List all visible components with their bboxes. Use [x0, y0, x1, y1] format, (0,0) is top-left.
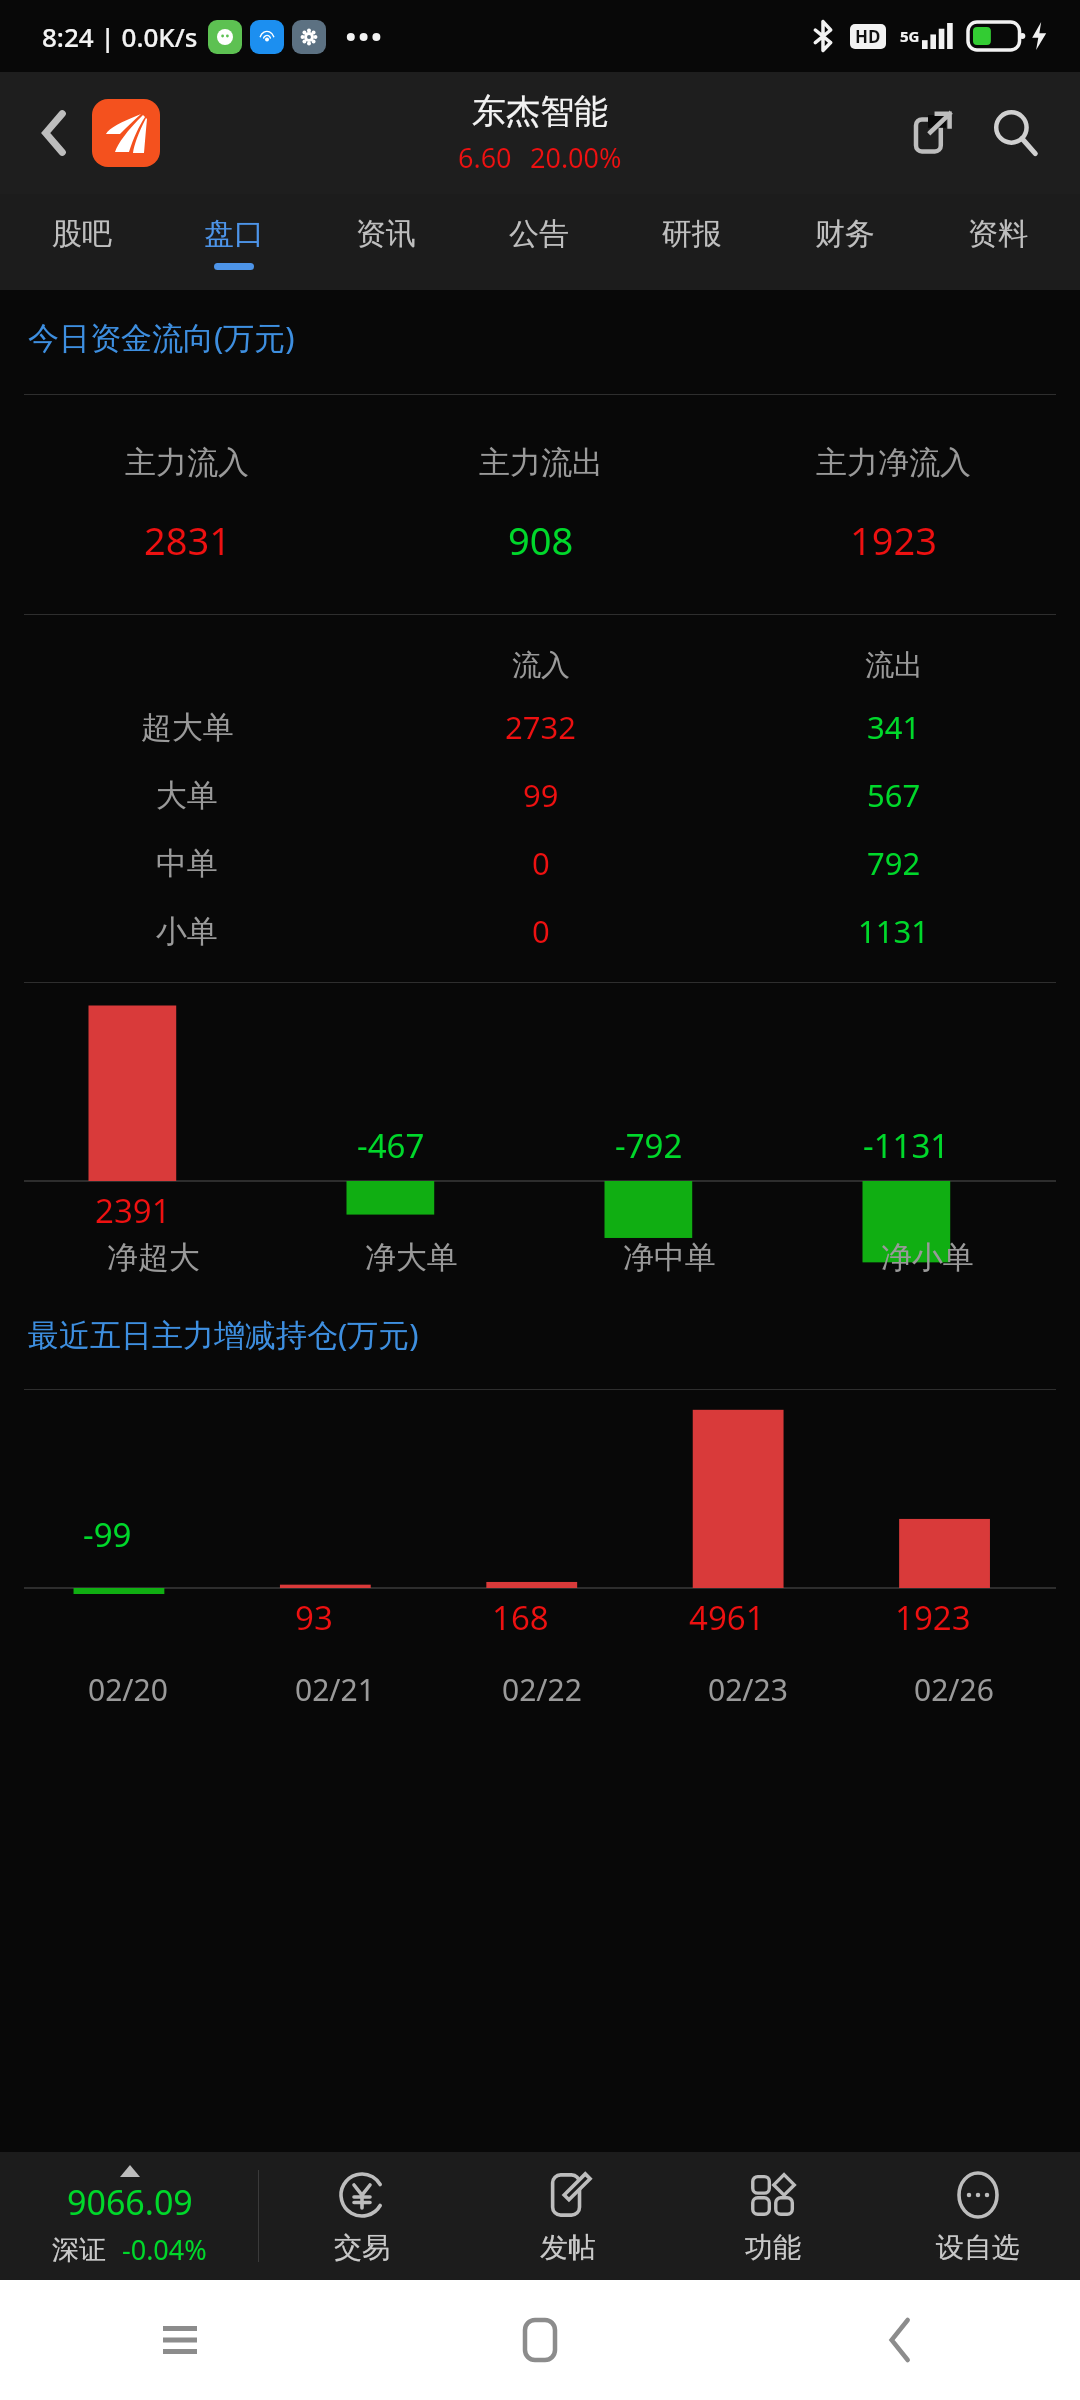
staticText: 4961	[689, 1595, 765, 1640]
staticText: 今日资金流向(万元)	[28, 316, 295, 358]
staticText: 20.00%	[530, 139, 622, 176]
button[interactable]: 资料	[921, 194, 1074, 290]
staticText: 02/20	[88, 1669, 168, 1710]
button[interactable]: 功能	[670, 2152, 875, 2280]
button[interactable]: Back	[22, 101, 86, 165]
staticText: 资料	[968, 215, 1028, 253]
button[interactable]: 设自选	[875, 2152, 1080, 2280]
staticText: 中单	[156, 844, 218, 883]
staticText: 功能	[745, 2230, 801, 2265]
staticText: 财务	[815, 215, 875, 253]
staticText: 02/21	[295, 1669, 375, 1710]
staticText: 9066.09	[67, 2179, 193, 2225]
staticText: 908	[508, 514, 574, 566]
button[interactable]: 9066.09	[0, 2152, 258, 2280]
staticText: 最近五日主力增减持仓(万元)	[28, 1313, 419, 1355]
staticText: 主力流入	[125, 443, 249, 482]
staticText: 公告	[509, 215, 569, 253]
staticText: 02/23	[708, 1669, 788, 1710]
button[interactable]: Share	[896, 97, 968, 169]
staticText: 93	[295, 1595, 333, 1640]
staticText: 净中单	[623, 1238, 716, 1277]
button[interactable]: 交易	[259, 2152, 465, 2280]
button[interactable]: 财务	[768, 194, 921, 290]
staticText: 168	[492, 1595, 549, 1640]
button[interactable]: 资讯	[310, 194, 462, 290]
staticText: 0	[532, 910, 550, 952]
staticText: 净小单	[881, 1238, 974, 1277]
staticText: 99	[523, 774, 559, 816]
staticText: 设自选	[936, 2230, 1020, 2265]
button[interactable]: Recents	[0, 2280, 360, 2400]
staticText: 流出	[865, 647, 923, 684]
staticText: HD	[855, 25, 881, 48]
staticText: -99	[83, 1512, 132, 1557]
staticText: 流入	[512, 647, 570, 684]
staticText: 341	[867, 706, 921, 748]
staticText: 1923	[850, 514, 937, 566]
button[interactable]: Home	[360, 2280, 720, 2400]
staticText: 792	[867, 842, 921, 884]
staticText: 8:24 | 0.0K/s	[42, 19, 198, 54]
staticText: 超大单	[141, 708, 234, 747]
staticText: -467	[357, 1123, 425, 1168]
staticText: 1923	[895, 1595, 971, 1640]
staticText: 大单	[156, 776, 218, 815]
staticText: 资讯	[356, 215, 416, 253]
staticText: 深证	[52, 2233, 106, 2267]
staticText: 东杰智能	[472, 90, 608, 133]
staticText: 小单	[156, 912, 218, 951]
staticText: 2391	[95, 1188, 171, 1233]
button[interactable]: 研报	[615, 194, 768, 290]
staticText: 股吧	[52, 215, 112, 253]
button[interactable]: App home	[92, 99, 160, 167]
staticText: 1131	[858, 910, 929, 952]
button[interactable]: 公告	[462, 194, 615, 290]
staticText: 2732	[505, 706, 576, 748]
staticText: 02/26	[914, 1669, 994, 1710]
staticText: 主力流出	[479, 443, 603, 482]
staticText: 盘口	[204, 215, 264, 253]
staticText: -0.04%	[122, 2231, 207, 2268]
button[interactable]: 股吧	[6, 194, 158, 290]
staticText: 净大单	[365, 1238, 458, 1277]
staticText: 02/22	[502, 1669, 582, 1710]
staticText: 6.60	[458, 139, 512, 176]
staticText: 2831	[144, 514, 231, 566]
staticText: 净超大	[107, 1238, 200, 1277]
button[interactable]: Back	[720, 2280, 1080, 2400]
button[interactable]: 盘口	[158, 194, 310, 290]
button[interactable]: 发帖	[465, 2152, 670, 2280]
staticText: 0	[532, 842, 550, 884]
staticText: -1131	[863, 1123, 950, 1168]
staticText: 567	[867, 774, 921, 816]
staticText: 发帖	[540, 2230, 596, 2265]
staticText: 主力净流入	[816, 443, 971, 482]
staticText: 研报	[662, 215, 722, 253]
staticText: 5G	[900, 26, 920, 46]
staticText: 交易	[334, 2230, 390, 2265]
staticText: -792	[615, 1123, 683, 1168]
button[interactable]: Search	[978, 95, 1054, 171]
